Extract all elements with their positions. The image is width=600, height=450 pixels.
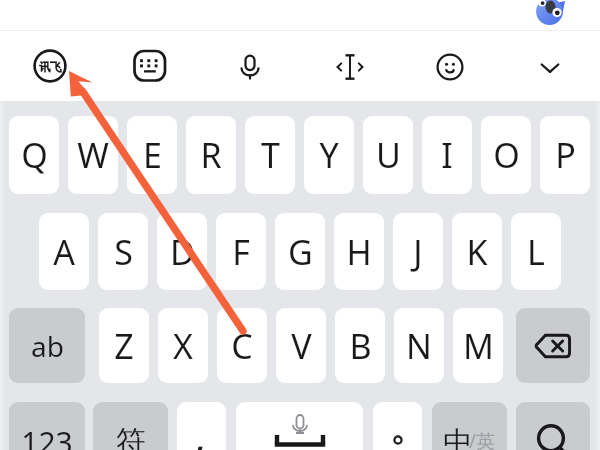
button[interactable]: O [481, 116, 531, 194]
button[interactable]: Keyboard [128, 46, 170, 88]
button[interactable]: S [98, 213, 148, 290]
staticText: ab [31, 327, 64, 365]
staticText: 符 [116, 423, 146, 450]
other: Sticker [520, 0, 580, 40]
staticText: L [527, 229, 545, 275]
staticText: K [466, 229, 488, 275]
button[interactable]: Comma [177, 402, 226, 450]
staticText: O [493, 132, 520, 178]
button[interactable]: Z [99, 308, 149, 383]
staticText: I [441, 132, 453, 178]
other: Annotation arrow [0, 0, 600, 450]
button[interactable]: Backspace [516, 308, 590, 383]
button[interactable]: Move cursor [329, 46, 371, 88]
button[interactable]: B [335, 308, 385, 383]
button[interactable]: V [276, 308, 326, 383]
button[interactable]: iFlytek input method [32, 48, 68, 84]
button[interactable]: U [363, 116, 413, 194]
staticText: C [231, 323, 253, 369]
button[interactable]: Collapse keyboard [529, 46, 571, 88]
button[interactable]: 符 [93, 402, 168, 450]
staticText: 讯飞 [39, 60, 62, 74]
staticText: X [173, 323, 193, 369]
button[interactable]: J [393, 213, 443, 290]
button[interactable]: H [334, 213, 384, 290]
staticText: E [143, 132, 162, 178]
button[interactable]: G [275, 213, 325, 290]
staticText: N [406, 323, 432, 369]
staticText: , [195, 410, 206, 450]
button[interactable]: Emoji [429, 46, 471, 88]
staticText: Y [319, 132, 339, 178]
button[interactable]: Period [373, 402, 422, 450]
button[interactable]: L [511, 213, 561, 290]
staticText: T [261, 132, 280, 178]
button[interactable]: ab [9, 308, 85, 383]
staticText: H [346, 229, 372, 275]
button[interactable]: T [245, 116, 295, 194]
button[interactable]: Space [236, 402, 363, 450]
button[interactable]: P [540, 116, 590, 194]
staticText: /英 [469, 428, 496, 450]
button[interactable]: X [158, 308, 208, 383]
button[interactable]: Search [516, 402, 590, 450]
staticText: 中 [443, 424, 472, 450]
staticText: D [170, 229, 195, 275]
button[interactable]: W [68, 116, 118, 194]
button[interactable]: Y [304, 116, 354, 194]
button[interactable]: E [127, 116, 177, 194]
button[interactable]: Q [9, 116, 59, 194]
button[interactable]: Chinese English toggle [432, 402, 507, 450]
button[interactable]: A [39, 213, 89, 290]
staticText: J [413, 229, 423, 275]
staticText: P [555, 132, 576, 178]
staticText: M [463, 323, 494, 369]
staticText: R [200, 132, 222, 178]
staticText: S [114, 229, 133, 275]
button[interactable]: D [157, 213, 207, 290]
button[interactable]: N [394, 308, 444, 383]
staticText: Z [114, 323, 134, 369]
button[interactable]: F [216, 213, 266, 290]
button[interactable]: 123 [9, 402, 85, 450]
staticText: G [288, 229, 313, 275]
button[interactable]: I [422, 116, 472, 194]
button[interactable]: R [186, 116, 236, 194]
staticText: B [349, 323, 372, 369]
button[interactable]: M [453, 308, 503, 383]
staticText: 123 [21, 422, 73, 450]
button[interactable]: Voice input [229, 46, 271, 88]
button[interactable]: C [217, 308, 267, 383]
staticText: A [53, 229, 75, 275]
staticText: Q [21, 132, 48, 178]
staticText: U [376, 132, 401, 178]
staticText: V [291, 323, 312, 369]
button[interactable]: K [452, 213, 502, 290]
staticText: W [77, 132, 109, 178]
staticText: F [232, 229, 250, 275]
